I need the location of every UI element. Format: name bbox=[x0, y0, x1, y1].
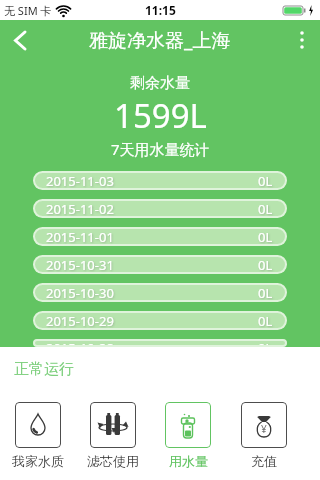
staticText: 滤芯使用 bbox=[87, 453, 139, 469]
button[interactable]: 2015-10-31 bbox=[33, 255, 287, 274]
button[interactable]: 2015-11-02 bbox=[33, 199, 287, 218]
staticText: 2015-10-30 bbox=[46, 284, 114, 302]
staticText: 7天用水量统计 bbox=[111, 139, 210, 159]
button[interactable]: 2015-11-01 bbox=[33, 227, 287, 246]
staticText: 剩余水量 bbox=[130, 74, 190, 93]
staticText: 2015-10-28 bbox=[46, 339, 114, 347]
staticText: 0L bbox=[258, 228, 273, 246]
staticText: 2015-10-29 bbox=[46, 312, 114, 330]
staticText: 充值 bbox=[251, 453, 277, 469]
button[interactable]: 2015-10-30 bbox=[33, 283, 287, 302]
staticText: 用水量 bbox=[169, 453, 208, 469]
staticText: 0L bbox=[258, 339, 273, 347]
staticText: 正常运行 bbox=[14, 360, 74, 379]
button[interactable]: ¥ bbox=[226, 402, 302, 469]
staticText: 无 SIM 卡 bbox=[4, 3, 52, 18]
staticText: 11:15 bbox=[145, 2, 176, 18]
button[interactable]: 滤芯使用 bbox=[75, 402, 150, 469]
staticText: 0L bbox=[258, 172, 273, 190]
staticText: 1599L bbox=[114, 93, 207, 138]
staticText: 0L bbox=[258, 256, 273, 274]
staticText: 2015-10-31 bbox=[46, 256, 114, 274]
staticText: 2015-11-03 bbox=[46, 172, 114, 190]
staticText: 雅旋净水器_上海 bbox=[89, 27, 231, 53]
staticText: 0L bbox=[258, 284, 273, 302]
button[interactable] bbox=[284, 22, 320, 58]
staticText: ¥ bbox=[261, 422, 267, 436]
button[interactable]: 2015-11-03 bbox=[33, 171, 287, 190]
staticText: 2015-11-01 bbox=[46, 228, 114, 246]
button[interactable]: 2015-10-28 bbox=[33, 339, 287, 347]
staticText: 0L bbox=[258, 200, 273, 218]
button[interactable]: 用水量 bbox=[150, 402, 226, 469]
staticText: 我家水质 bbox=[12, 453, 64, 469]
button[interactable]: 2015-10-29 bbox=[33, 311, 287, 330]
button[interactable]: 我家水质 bbox=[0, 402, 75, 469]
staticText: 0L bbox=[258, 312, 273, 330]
staticText: 2015-11-02 bbox=[46, 200, 114, 218]
button[interactable] bbox=[0, 20, 40, 60]
